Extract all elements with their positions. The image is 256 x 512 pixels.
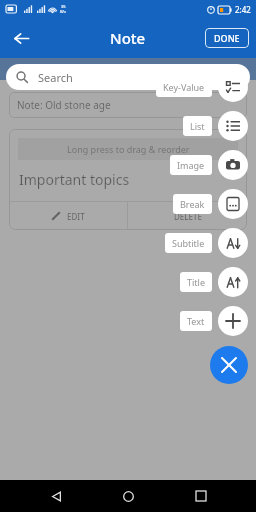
staticText: Subtitle: [172, 237, 205, 249]
staticText: Key-Value: [163, 81, 205, 93]
button[interactable]: Image: [170, 155, 212, 175]
button[interactable]: Break: [218, 189, 248, 219]
staticText: List: [190, 120, 205, 132]
staticText: Long press to drag & reorder: [67, 143, 190, 155]
button[interactable]: Image: [218, 150, 248, 180]
button[interactable]: Title: [180, 272, 212, 292]
button[interactable]: Break: [173, 194, 212, 214]
button[interactable]: List: [218, 111, 248, 141]
button[interactable]: Subtitle: [218, 228, 248, 258]
button[interactable]: List: [183, 116, 212, 136]
button[interactable]: Recents: [184, 480, 218, 512]
staticText: Image: [177, 159, 205, 171]
button[interactable]: Title: [218, 267, 248, 297]
staticText: Search: [38, 70, 73, 85]
button[interactable]: DELETE: [128, 202, 247, 230]
staticText: B/s: [60, 9, 67, 14]
staticText: Text: [187, 315, 205, 327]
staticText: EDIT: [67, 211, 85, 222]
button[interactable]: Back: [39, 480, 73, 512]
button[interactable]: Note: Old stone age: [9, 92, 247, 118]
button[interactable]: DONE: [205, 28, 249, 48]
button[interactable]: Back: [5, 22, 37, 54]
button[interactable]: Text: [218, 306, 248, 336]
button[interactable]: Search: [6, 64, 250, 90]
staticText: DONE: [214, 32, 240, 44]
staticText: 2:42: [235, 4, 251, 15]
button[interactable]: Text: [180, 311, 212, 331]
staticText: Important topics: [19, 170, 130, 189]
staticText: DELETE: [174, 211, 202, 222]
staticText: 35: [61, 4, 66, 9]
button[interactable]: Key-Value: [156, 77, 212, 97]
button[interactable]: EDIT: [9, 202, 127, 230]
staticText: Note: Old stone age: [17, 98, 111, 112]
button[interactable]: Home: [111, 480, 145, 512]
button[interactable]: Key-Value: [218, 72, 248, 102]
button[interactable]: Close menu: [210, 346, 248, 384]
staticText: Note: [110, 28, 146, 48]
staticText: Break: [180, 198, 205, 210]
button[interactable]: Subtitle: [165, 233, 212, 253]
staticText: Title: [187, 276, 205, 288]
